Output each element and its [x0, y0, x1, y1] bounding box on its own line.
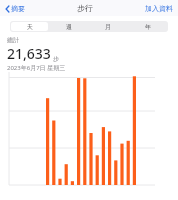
button[interactable]: 摘要	[4, 4, 26, 13]
staticText: 21,633	[7, 44, 51, 63]
staticText: 總計	[7, 36, 19, 44]
button[interactable]: 天	[11, 22, 48, 31]
staticText: 加入資料	[145, 4, 173, 13]
staticText: 月	[105, 23, 111, 31]
button[interactable]: 加入資料	[144, 4, 174, 13]
staticText: 年	[145, 23, 151, 31]
staticText: 週	[66, 23, 72, 31]
staticText: 步行	[77, 3, 93, 13]
button[interactable]: 年	[129, 22, 167, 31]
staticText: 天	[27, 23, 33, 31]
button[interactable]: 週	[50, 22, 87, 31]
staticText: 步	[53, 55, 59, 63]
staticText: 摘要	[11, 4, 25, 13]
button[interactable]: 月	[89, 22, 127, 31]
staticText: 2023年6月7日 星期三	[7, 64, 66, 72]
